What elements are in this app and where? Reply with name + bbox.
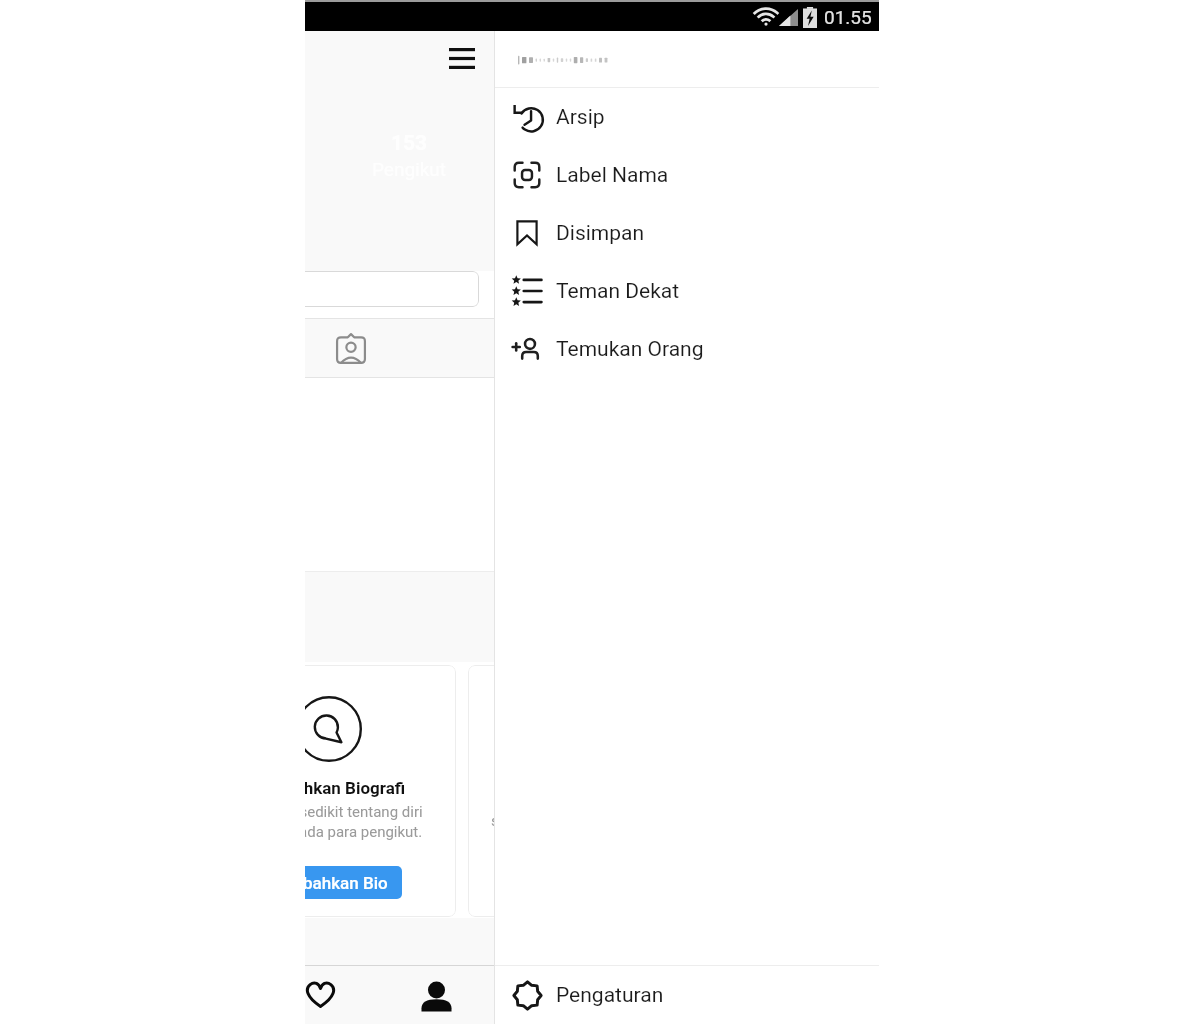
button[interactable]: Label Nama xyxy=(495,146,879,204)
button[interactable]: Disimpan xyxy=(495,204,879,262)
button[interactable]: Activity xyxy=(305,966,349,1024)
staticText: Arsip xyxy=(556,105,605,130)
staticText: sesuatu tentang diri Anda pada xyxy=(491,812,495,830)
staticText: Beri tahu sedikit tentang diri Anda kepa… xyxy=(305,803,423,840)
staticText: Disimpan xyxy=(556,221,645,246)
staticText: Temukan Orang xyxy=(556,337,704,362)
button[interactable]: Pengaturan xyxy=(495,966,879,1024)
button[interactable]: Tambahkan Bio xyxy=(305,866,402,899)
staticText: Tambahkan Bio xyxy=(305,873,388,893)
button[interactable]: sesuatu tentang diri Anda pada xyxy=(468,665,495,917)
staticText: Teman Dekat xyxy=(556,279,680,304)
staticText: 01.55 xyxy=(824,6,872,28)
button[interactable]: Tambahkan Biografi xyxy=(305,665,456,917)
staticText: Pengaturan xyxy=(556,983,664,1008)
button[interactable]: Menu xyxy=(443,39,481,77)
button[interactable]: Teman Dekat xyxy=(495,262,879,320)
button[interactable]: Tagged photos xyxy=(332,330,370,368)
staticText: Tambahkan Biografi xyxy=(305,778,406,798)
button[interactable]: Temukan Orang xyxy=(495,320,879,378)
staticText: Label Nama xyxy=(556,163,669,188)
button[interactable]: Arsip xyxy=(495,88,879,146)
button[interactable]: Profile xyxy=(407,967,465,1024)
button[interactable] xyxy=(305,271,479,307)
